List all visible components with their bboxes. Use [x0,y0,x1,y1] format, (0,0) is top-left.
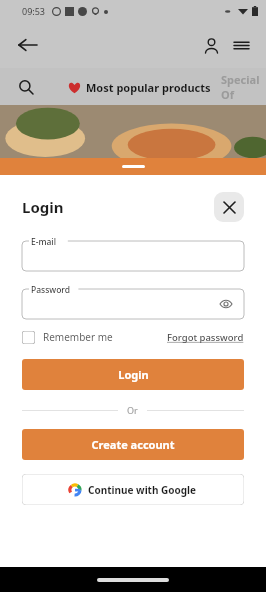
staticText: Remember me [43,330,113,344]
button[interactable] [22,241,244,271]
button[interactable]: Login [22,359,244,390]
button[interactable]: Menu [226,30,256,60]
button[interactable]: Remember me [22,328,113,346]
staticText: 09:53 [22,5,46,17]
button[interactable]: Close [214,192,244,222]
staticText: Or [127,404,138,416]
button[interactable]: Continue with Google [22,474,244,505]
button[interactable]: Create account [22,429,244,460]
staticText: Login [22,197,64,217]
staticText: Continue with Google [88,483,197,497]
staticText: E-mail [31,236,56,248]
button[interactable]: Show password [22,289,244,319]
staticText: Special Of [221,72,266,102]
staticText: Login [118,367,149,382]
button[interactable]: Account [196,30,226,60]
staticText: Password [31,284,71,296]
button[interactable]: Back [10,27,46,63]
button[interactable]: Search [10,71,42,103]
button[interactable]: Forgot password [167,331,244,344]
staticText: Most popular products [86,80,211,95]
staticText: Forgot password [167,331,244,344]
staticText: Create account [91,437,175,452]
button[interactable]: Show password [216,294,236,314]
